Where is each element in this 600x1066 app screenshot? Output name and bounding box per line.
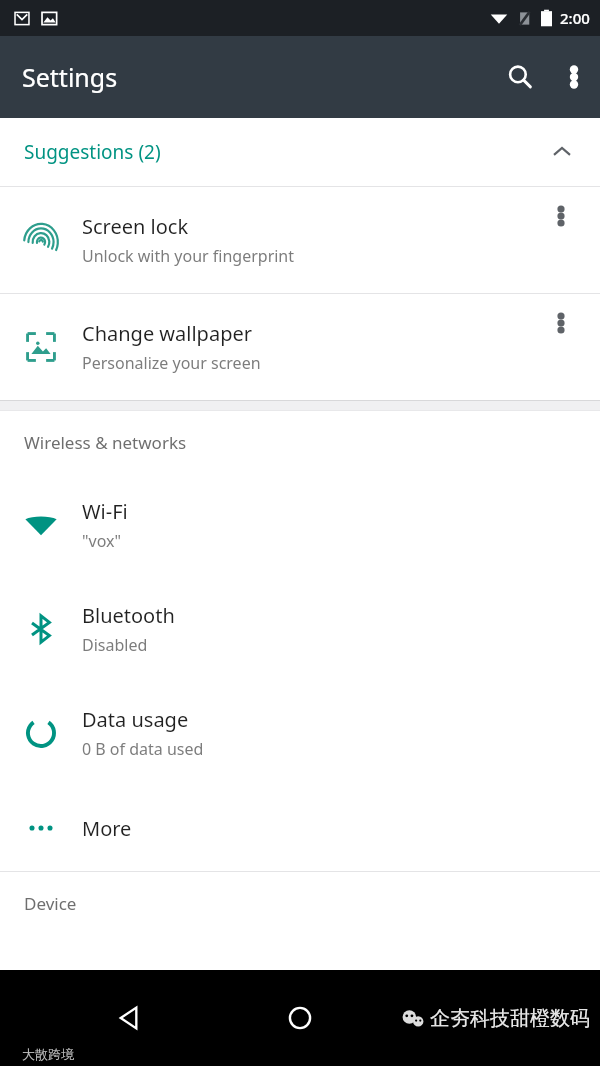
button[interactable]: More options: [548, 51, 600, 103]
staticText: More: [82, 815, 132, 842]
staticText: Unlock with your fingerprint: [82, 245, 295, 267]
staticText: Disabled: [82, 634, 148, 656]
staticText: Change wallpaper: [82, 320, 252, 347]
staticText: Screen lock: [82, 213, 189, 240]
staticText: Device: [24, 892, 77, 915]
staticText: Wireless & networks: [24, 431, 187, 454]
staticText: Data usage: [82, 706, 189, 733]
staticText: "vox": [82, 530, 122, 552]
button[interactable]: Change wallpaper: [0, 294, 600, 400]
staticText: Settings: [22, 60, 118, 94]
button[interactable]: Bluetooth: [0, 577, 600, 681]
button[interactable]: Suggestions (2): [0, 118, 600, 186]
staticText: 企夯科技甜橙数码: [430, 1006, 590, 1031]
staticText: 2:00: [560, 8, 590, 28]
staticText: Personalize your screen: [82, 352, 261, 374]
button[interactable]: Suggestion options: [540, 195, 582, 237]
button[interactable]: Wi-Fi: [0, 473, 600, 577]
button[interactable]: Search: [492, 49, 548, 105]
button[interactable]: Back: [100, 990, 156, 1046]
staticText: 0 B of data used: [82, 738, 204, 760]
button[interactable]: Data usage: [0, 681, 600, 785]
button[interactable]: More: [0, 785, 600, 871]
staticText: 大散跨境: [22, 1046, 74, 1062]
button[interactable]: Collapse suggestions: [544, 134, 580, 170]
staticText: Wi-Fi: [82, 498, 128, 525]
button[interactable]: Screen lock: [0, 187, 600, 293]
staticText: Bluetooth: [82, 602, 175, 629]
staticText: Suggestions (2): [24, 139, 161, 165]
button[interactable]: Suggestion options: [540, 302, 582, 344]
button[interactable]: Home: [272, 990, 328, 1046]
